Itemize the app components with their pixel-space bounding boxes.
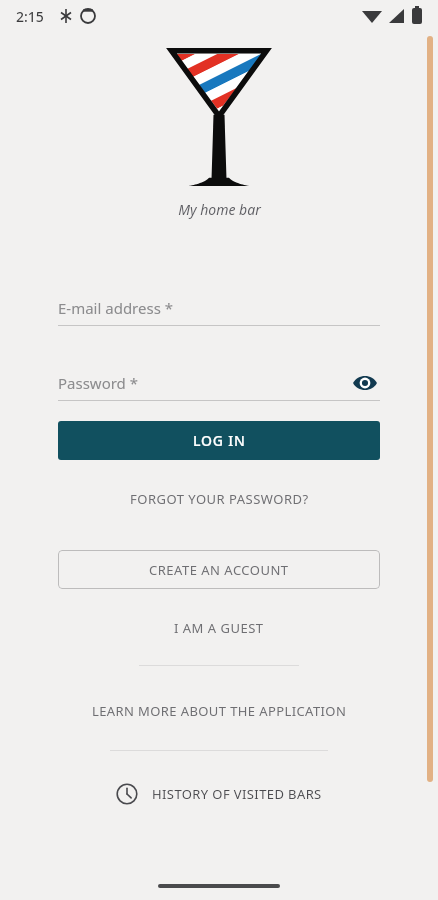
staticText: LOG IN [193,431,246,450]
staticText: E-mail address * [58,298,174,318]
button[interactable]: I AM A GUEST [162,613,276,643]
staticText: My home bar [178,200,261,219]
staticText: FORGOT YOUR PASSWORD? [130,490,309,508]
staticText: 2:15 [16,7,44,26]
staticText: I AM A GUEST [174,619,264,637]
button[interactable]: LOG IN [58,421,380,460]
staticText: HISTORY OF VISITED BARS [152,785,322,803]
button[interactable]: Password * [58,366,380,400]
staticText: CREATE AN ACCOUNT [149,561,289,579]
button[interactable]: E-mail address * [58,291,380,325]
button[interactable]: LEARN MORE ABOUT THE APPLICATION [80,696,359,726]
button[interactable]: FORGOT YOUR PASSWORD? [118,484,321,514]
button[interactable]: Show password [350,368,380,398]
staticText: Password * [58,373,139,393]
button[interactable]: HISTORY OF VISITED BARS [106,777,332,811]
staticText: LEARN MORE ABOUT THE APPLICATION [92,702,347,720]
button[interactable]: CREATE AN ACCOUNT [58,550,380,589]
